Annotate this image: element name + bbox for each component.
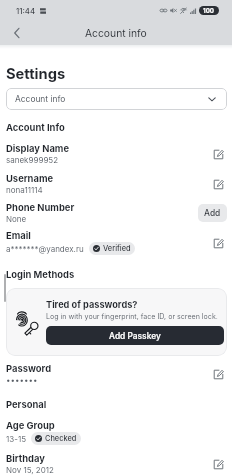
staticText: Password — [6, 363, 52, 374]
staticText: 13-15 — [6, 434, 26, 444]
staticText: Display Name — [6, 143, 69, 154]
button[interactable]: Back — [6, 22, 28, 44]
staticText: 11:44 — [16, 6, 36, 15]
staticText: Birthday — [6, 453, 45, 464]
staticText: Settings — [6, 65, 66, 83]
staticText: Tired of passwords? — [46, 299, 138, 310]
staticText: sanek999952 — [6, 155, 59, 165]
button[interactable]: Edit — [209, 175, 227, 193]
button[interactable]: Add Passkey — [46, 326, 224, 345]
staticText: Add Passkey — [109, 331, 161, 341]
staticText: Checked — [45, 434, 77, 443]
staticText: Account Info — [6, 122, 65, 133]
button[interactable]: Add — [198, 204, 227, 222]
staticText: None — [6, 214, 27, 224]
button[interactable]: Edit — [209, 455, 227, 473]
staticText: Username — [6, 173, 54, 184]
staticText: Add — [204, 208, 221, 218]
staticText: a*******@yandex.ru — [6, 244, 84, 254]
staticText: Email — [6, 230, 31, 241]
staticText: Login Methods — [6, 269, 75, 280]
staticText: nona11114 — [6, 185, 43, 195]
staticText: 100 — [203, 7, 215, 15]
staticText: ••••••• — [6, 375, 38, 385]
button[interactable]: Edit — [209, 365, 227, 383]
staticText: Age Group — [6, 420, 55, 431]
button[interactable]: Edit — [209, 145, 227, 163]
staticText: Verified — [103, 244, 131, 253]
staticText: Nov 15, 2012 — [6, 465, 54, 475]
staticText: Personal — [6, 399, 47, 410]
button[interactable]: Account info — [6, 88, 227, 110]
staticText: Account info — [85, 27, 147, 39]
button[interactable]: Edit — [209, 234, 227, 252]
staticText: Log in with your fingerprint, face ID, o… — [46, 312, 218, 321]
staticText: Phone Number — [6, 202, 75, 213]
staticText: Account info — [15, 94, 66, 104]
